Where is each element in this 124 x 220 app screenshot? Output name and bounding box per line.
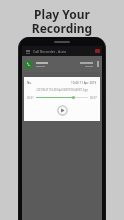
staticText: Play Your Recording Calls [4,6,120,51]
button[interactable]: Open navigation menu [24,48,31,55]
staticText: /20190411104034p0308765544981.3gp [27,88,97,92]
button[interactable]: Play recording [57,105,68,116]
button[interactable]: More options [95,59,100,69]
button[interactable]: Record [94,48,100,54]
staticText: Call Recorder - Auto [33,49,67,54]
staticText: 10:40 11 Apr 2019 [71,81,97,85]
staticText: 00:07 [90,96,97,100]
staticText: 00:01 [27,96,34,100]
button[interactable]: More options [22,56,102,72]
button[interactable]: Playback position [36,95,88,100]
staticText: No. [27,81,32,85]
